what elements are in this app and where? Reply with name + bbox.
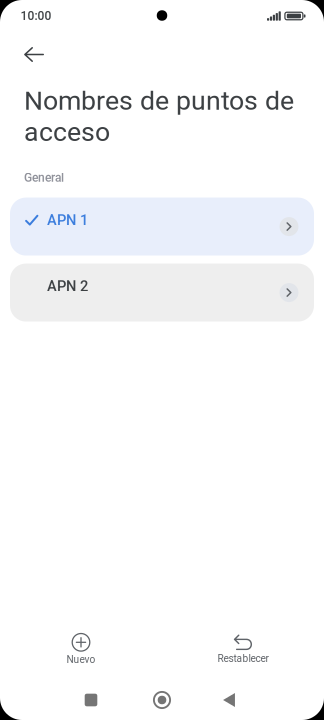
- button[interactable]: Back: [12, 31, 56, 78]
- button[interactable]: APN 1: [10, 198, 314, 256]
- staticText: Nuevo: [66, 654, 95, 665]
- staticText: Restablecer: [217, 653, 268, 665]
- staticText: APN 2: [47, 278, 88, 295]
- button[interactable]: Back: [203, 687, 263, 713]
- staticText: General: [24, 170, 64, 185]
- staticText: 10:00: [20, 9, 51, 23]
- button[interactable]: Recents: [61, 687, 121, 713]
- button[interactable]: Home: [132, 687, 192, 713]
- button[interactable]: Restablecer: [178, 635, 308, 664]
- staticText: APN 1: [47, 212, 88, 229]
- staticText: Nombres de puntos de acceso: [24, 85, 294, 147]
- button[interactable]: Nuevo: [16, 635, 146, 664]
- button[interactable]: APN 2: [10, 264, 314, 322]
